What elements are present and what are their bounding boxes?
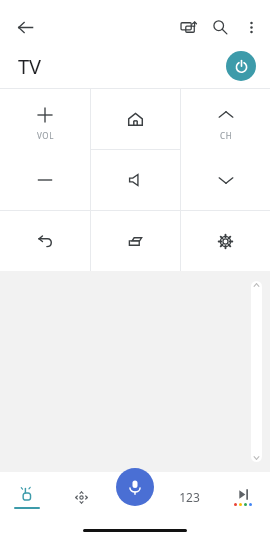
staticText: 123 [179,489,200,505]
button[interactable]: Channel up [181,89,270,149]
button[interactable]: Volume down [0,150,90,210]
button[interactable]: Scroll [251,281,262,462]
button[interactable]: Power [226,51,256,81]
button[interactable]: Number pad [162,472,216,522]
button[interactable]: Channel down [181,150,270,210]
button[interactable]: Voice search [116,468,154,506]
staticText: VOL [37,130,54,141]
button[interactable]: Back [8,10,42,44]
button[interactable]: Home [91,89,180,149]
staticText: TV [18,53,42,80]
staticText: CH [220,130,233,141]
button[interactable]: Volume up [0,89,90,149]
button[interactable]: Settings [181,211,270,271]
button[interactable]: Back [0,211,90,271]
button[interactable]: Search [204,11,236,43]
button[interactable]: More options [236,12,266,42]
button[interactable]: Media controls [216,472,270,522]
button[interactable]: Switch device [172,11,204,43]
button[interactable]: Mute [91,150,180,210]
button[interactable]: D-pad [54,472,108,522]
button[interactable]: Touchpad [0,271,270,472]
button[interactable]: Input source [91,211,180,271]
button[interactable]: Touchpad [0,472,54,522]
